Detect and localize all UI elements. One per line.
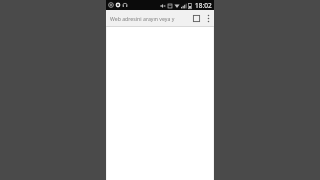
button[interactable]: More options: [203, 10, 214, 26]
staticText: 18:02: [195, 1, 212, 10]
button[interactable]: Web adresini arayın veya y: [106, 10, 189, 26]
staticText: Web adresini arayın veya y: [110, 15, 175, 22]
button[interactable]: Tabs: [189, 10, 203, 26]
